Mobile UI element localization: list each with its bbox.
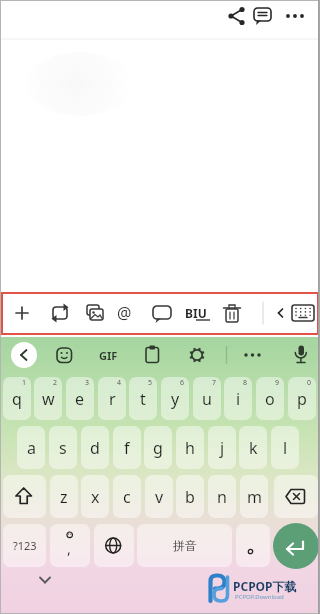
staticText: g	[153, 437, 163, 459]
button[interactable]	[273, 523, 319, 569]
button[interactable]: s	[49, 426, 77, 469]
staticText: q	[12, 388, 22, 410]
button[interactable]: q	[3, 377, 31, 420]
button[interactable]	[184, 299, 212, 327]
staticText: m	[247, 486, 262, 508]
staticText: u	[202, 388, 212, 410]
button[interactable]	[148, 299, 176, 327]
staticText: l	[283, 437, 288, 459]
staticText: f	[124, 437, 130, 459]
button[interactable]	[50, 524, 90, 567]
staticText: a	[27, 437, 36, 459]
button[interactable]: i	[224, 377, 252, 420]
button[interactable]	[95, 342, 121, 368]
button[interactable]: z	[50, 475, 78, 518]
button[interactable]	[113, 299, 141, 327]
button[interactable]: y	[161, 377, 189, 420]
button[interactable]	[250, 4, 274, 28]
button[interactable]: f	[113, 426, 141, 469]
staticText: v	[155, 486, 164, 508]
staticText: h	[185, 437, 195, 459]
button[interactable]: d	[81, 426, 109, 469]
button[interactable]	[8, 299, 36, 327]
staticText: 3	[85, 378, 90, 388]
button[interactable]	[51, 342, 77, 368]
staticText: b	[185, 486, 195, 508]
button[interactable]	[184, 342, 210, 368]
button[interactable]: @	[117, 302, 132, 324]
staticText: c	[123, 486, 131, 508]
button[interactable]	[239, 342, 265, 368]
staticText: ?123	[13, 538, 37, 553]
staticText: s	[59, 437, 67, 459]
staticText: ,	[67, 539, 71, 558]
button[interactable]: u	[193, 377, 221, 420]
button[interactable]	[282, 4, 306, 28]
button[interactable]: m	[240, 475, 268, 518]
staticText: t	[140, 388, 146, 410]
button[interactable]: v	[145, 475, 173, 518]
staticText: PCPOP下载	[233, 578, 297, 594]
button[interactable]: w	[34, 377, 62, 420]
staticText: 8	[243, 378, 248, 388]
button[interactable]: c	[113, 475, 141, 518]
button[interactable]	[288, 342, 314, 368]
button[interactable]	[46, 299, 74, 327]
button[interactable]: k	[239, 426, 267, 469]
button[interactable]: b	[176, 475, 204, 518]
button[interactable]	[290, 299, 316, 327]
button[interactable]: p	[288, 377, 316, 420]
button[interactable]: 拼音	[137, 524, 232, 567]
button[interactable]: e	[66, 377, 94, 420]
staticText: 9	[275, 378, 280, 388]
staticText: r	[109, 388, 116, 410]
button[interactable]	[270, 299, 290, 327]
button[interactable]: n	[208, 475, 236, 518]
button[interactable]: t	[129, 377, 157, 420]
button[interactable]	[236, 524, 270, 567]
staticText: 2	[53, 378, 58, 388]
button[interactable]	[274, 475, 318, 518]
button[interactable]	[224, 4, 248, 28]
staticText: 0	[307, 378, 312, 388]
button[interactable]: ?123	[3, 524, 46, 567]
staticText: x	[91, 486, 100, 508]
staticText: w	[42, 388, 55, 410]
staticText: 4	[117, 378, 122, 388]
staticText: 1	[22, 378, 27, 388]
button[interactable]	[218, 299, 246, 327]
staticText: 5	[148, 378, 153, 388]
staticText: y	[171, 388, 180, 410]
button[interactable]: j	[208, 426, 236, 469]
staticText: 7	[212, 378, 217, 388]
button[interactable]: BIU	[185, 305, 207, 321]
button[interactable]: l	[271, 426, 299, 469]
staticText: p	[297, 388, 307, 410]
staticText: z	[60, 486, 68, 508]
button[interactable]	[94, 524, 134, 567]
button[interactable]: GIF	[99, 348, 118, 363]
staticText: i	[236, 388, 241, 410]
staticText: d	[90, 437, 100, 459]
button[interactable]	[81, 299, 109, 327]
button[interactable]	[3, 475, 46, 518]
staticText: j	[220, 437, 225, 459]
button[interactable]: o	[256, 377, 284, 420]
staticText: 拼音	[173, 538, 197, 553]
button[interactable]: h	[176, 426, 204, 469]
button[interactable]: x	[81, 475, 109, 518]
staticText: k	[249, 437, 258, 459]
button[interactable]: a	[17, 426, 45, 469]
button[interactable]: r	[98, 377, 126, 420]
button[interactable]: g	[144, 426, 172, 469]
button[interactable]	[11, 342, 37, 368]
staticText: n	[217, 486, 227, 508]
staticText: 6	[180, 378, 185, 388]
staticText: PCPOP.Download	[235, 593, 284, 601]
staticText: o	[265, 388, 275, 410]
button[interactable]	[139, 342, 165, 368]
staticText: e	[75, 388, 85, 410]
